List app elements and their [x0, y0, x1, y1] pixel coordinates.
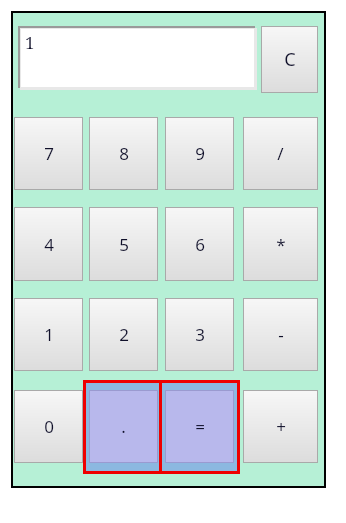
staticText: 9: [195, 142, 205, 165]
staticText: 0: [44, 415, 54, 438]
button[interactable]: 3: [165, 298, 234, 371]
staticText: -: [278, 323, 284, 346]
button[interactable]: 6: [165, 207, 234, 281]
button[interactable]: *: [243, 207, 318, 281]
staticText: .: [121, 415, 126, 438]
staticText: 2: [119, 323, 129, 346]
button[interactable]: -: [243, 298, 318, 371]
staticText: 6: [195, 233, 205, 256]
button[interactable]: C: [261, 26, 318, 93]
button[interactable]: 2: [89, 298, 158, 371]
staticText: 1: [44, 323, 54, 346]
button[interactable]: 0: [14, 390, 83, 463]
staticText: 4: [44, 233, 54, 256]
button[interactable]: Equals: [165, 390, 234, 463]
staticText: 5: [119, 233, 129, 256]
staticText: 8: [119, 142, 129, 165]
staticText: +: [276, 415, 286, 438]
button[interactable]: 5: [89, 207, 158, 281]
staticText: /: [277, 142, 284, 165]
staticText: 1: [25, 31, 35, 54]
button[interactable]: 1: [14, 298, 83, 371]
button[interactable]: Decimal point: [89, 390, 158, 463]
button[interactable]: 9: [165, 117, 234, 190]
button[interactable]: 1: [21, 29, 254, 87]
button[interactable]: 8: [89, 117, 158, 190]
staticText: =: [195, 415, 205, 438]
button[interactable]: 4: [14, 207, 83, 281]
staticText: 7: [44, 142, 54, 165]
button[interactable]: /: [243, 117, 318, 190]
staticText: *: [276, 233, 286, 256]
staticText: C: [284, 47, 296, 72]
staticText: 3: [195, 323, 205, 346]
button[interactable]: +: [243, 390, 318, 463]
button[interactable]: 7: [14, 117, 83, 190]
